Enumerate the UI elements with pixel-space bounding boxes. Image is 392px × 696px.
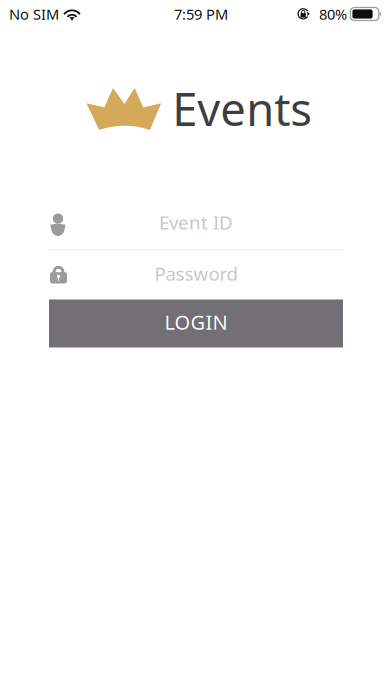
staticText: Event ID — [159, 210, 233, 235]
staticText: No SIM — [9, 4, 59, 24]
staticText: Password — [154, 261, 237, 286]
staticText: 7:59 PM — [174, 4, 228, 24]
staticText: Events — [172, 78, 312, 139]
staticText: LOGIN — [164, 309, 227, 335]
staticText: 80% — [319, 4, 347, 24]
button[interactable]: LOGIN — [49, 299, 343, 347]
